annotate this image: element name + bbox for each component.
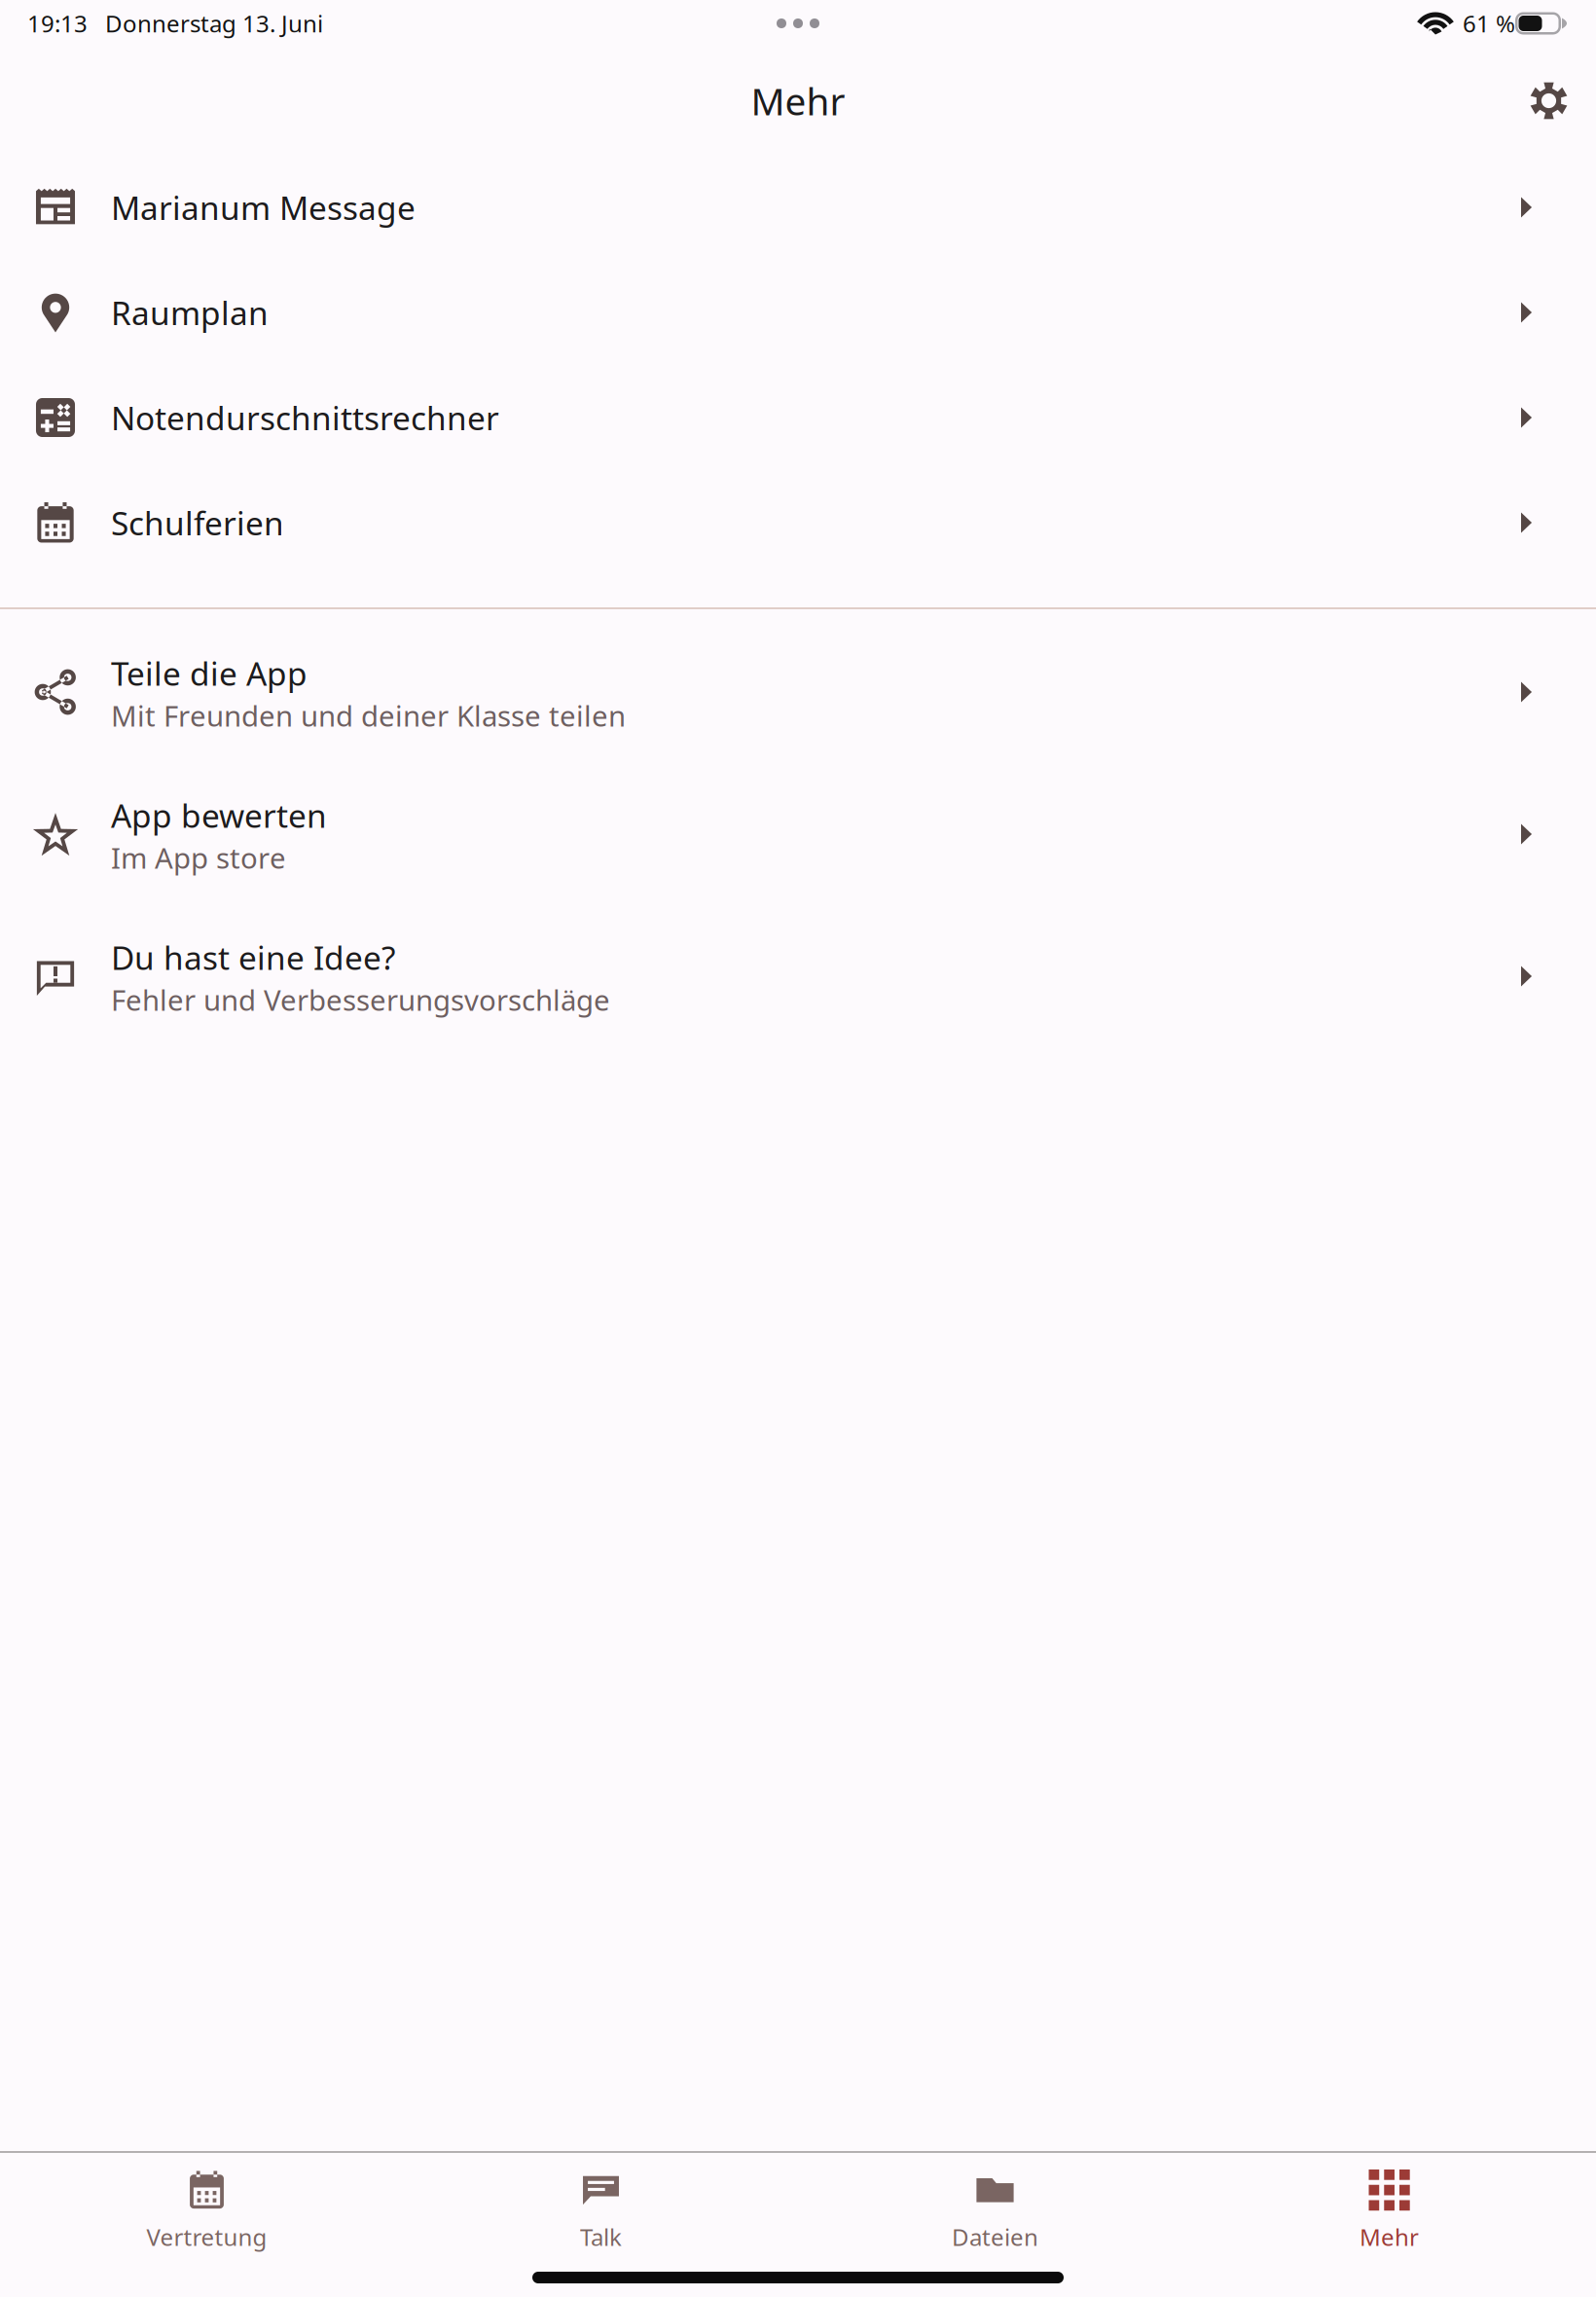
button[interactable]: Teile die App	[0, 621, 1596, 763]
staticText: Mehr	[1360, 2221, 1419, 2252]
button[interactable]: Raumplan	[0, 260, 1596, 365]
staticText: Mehr	[751, 76, 845, 126]
staticText: Donnerstag 13. Juni	[88, 8, 323, 39]
staticText: Mit Freunden und deiner Klasse teilen	[111, 697, 626, 735]
button[interactable]: Marianum Message	[0, 155, 1596, 260]
staticText: Talk	[580, 2221, 622, 2252]
staticText: 61 %	[1451, 8, 1515, 39]
button[interactable]: Dateien	[798, 2153, 1192, 2258]
button[interactable]: Einstellungen	[1514, 66, 1583, 135]
staticText: Marianum Message	[111, 186, 416, 229]
staticText: Teile die App	[111, 652, 308, 695]
staticText: Du hast eine Idee?	[111, 936, 395, 979]
button[interactable]: Notendurschnittsrechner	[0, 365, 1596, 470]
button[interactable]: Mehr	[1192, 2153, 1586, 2258]
staticText: Dateien	[952, 2221, 1038, 2252]
staticText: Fehler und Verbesserungsvorschläge	[111, 981, 610, 1019]
staticText: Vertretung	[146, 2221, 267, 2252]
staticText: Schulferien	[111, 501, 284, 544]
staticText: App bewerten	[111, 794, 327, 837]
staticText: Im App store	[111, 839, 286, 877]
button[interactable]: Vertretung	[10, 2153, 404, 2258]
button[interactable]: App bewerten	[0, 763, 1596, 905]
staticText: Raumplan	[111, 291, 269, 334]
staticText: 19:13	[27, 8, 88, 39]
button[interactable]: Schulferien	[0, 470, 1596, 575]
button[interactable]: Talk	[404, 2153, 798, 2258]
staticText: Notendurschnittsrechner	[111, 396, 499, 439]
button[interactable]: Du hast eine Idee?	[0, 905, 1596, 1047]
